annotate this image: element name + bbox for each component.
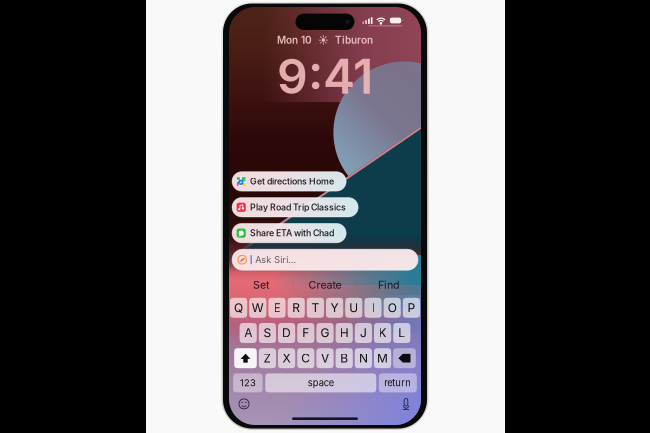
button[interactable]: Z	[259, 348, 276, 368]
staticText: W	[252, 300, 264, 315]
staticText: Mon 10 ☀ Tiburon	[277, 34, 373, 46]
button[interactable]: Y	[326, 298, 343, 318]
staticText: Set	[253, 278, 269, 291]
button[interactable]: Delete	[393, 348, 416, 368]
staticText: T	[311, 300, 319, 315]
button[interactable]: space	[265, 373, 376, 392]
button[interactable]: S	[259, 323, 276, 343]
button[interactable]: Dictate	[399, 396, 413, 411]
staticText: Get directions Home	[250, 176, 334, 187]
staticText: P	[407, 300, 415, 315]
staticText: R	[292, 300, 300, 315]
button[interactable]: X	[278, 348, 295, 368]
button[interactable]: Q	[230, 298, 247, 318]
staticText: 9:41	[277, 47, 373, 105]
staticText: Ask Siri…	[255, 254, 296, 265]
staticText: Create	[308, 278, 341, 291]
button[interactable]: Shift	[234, 348, 257, 368]
staticText: H	[340, 326, 349, 340]
button[interactable]: B	[336, 348, 353, 368]
button[interactable]: T	[307, 298, 324, 318]
button[interactable]: E	[268, 298, 286, 318]
button[interactable]: W	[249, 298, 266, 318]
button[interactable]: Play Road Trip Classics	[232, 197, 358, 217]
button[interactable]: Find	[357, 275, 421, 294]
button[interactable]: K	[374, 323, 391, 343]
staticText: J	[360, 326, 367, 340]
staticText: I	[371, 300, 374, 315]
staticText: D	[282, 326, 291, 340]
button[interactable]: Get directions Home	[232, 172, 346, 191]
staticText: Q	[234, 300, 243, 315]
staticText: Find	[378, 278, 400, 291]
staticText: A	[244, 326, 252, 340]
button[interactable]: L	[393, 323, 410, 343]
button[interactable]: P	[403, 298, 420, 318]
staticText: return	[384, 377, 411, 389]
button[interactable]: 123	[233, 373, 263, 392]
button[interactable]: J	[355, 323, 372, 343]
staticText: K	[379, 326, 387, 340]
button[interactable]: R	[288, 298, 305, 318]
button[interactable]: Set	[229, 275, 293, 294]
staticText: Play Road Trip Classics	[250, 202, 346, 212]
staticText: B	[340, 351, 348, 365]
button[interactable]: N	[355, 348, 372, 368]
button[interactable]: I	[364, 298, 382, 318]
button[interactable]: G	[316, 323, 334, 343]
button[interactable]: A	[240, 323, 257, 343]
button[interactable]: C	[297, 348, 314, 368]
button[interactable]: M	[374, 348, 391, 368]
button[interactable]: Create	[293, 275, 357, 294]
staticText: G	[320, 326, 329, 340]
staticText: C	[301, 351, 310, 365]
button[interactable]: Ask Siri…	[232, 249, 418, 270]
staticText: U	[349, 300, 358, 315]
button[interactable]: O	[384, 298, 401, 318]
staticText: V	[321, 351, 329, 365]
button[interactable]: V	[316, 348, 334, 368]
button[interactable]: D	[278, 323, 295, 343]
staticText: Y	[331, 300, 339, 315]
button[interactable]: F	[297, 323, 314, 343]
staticText: N	[359, 351, 368, 365]
staticText: O	[388, 300, 397, 315]
staticText: S	[263, 326, 271, 340]
staticText: L	[398, 326, 405, 340]
button[interactable]: U	[345, 298, 362, 318]
button[interactable]: Emoji	[237, 397, 251, 411]
button[interactable]: Share ETA with Chad	[232, 223, 346, 243]
button[interactable]: return	[379, 373, 417, 392]
staticText: F	[302, 326, 309, 340]
staticText: M	[377, 351, 388, 365]
staticText: Z	[263, 351, 271, 365]
button[interactable]: H	[336, 323, 353, 343]
staticText: space	[308, 377, 334, 389]
staticText: E	[273, 300, 280, 315]
staticText: X	[283, 351, 291, 365]
staticText: Share ETA with Chad	[250, 228, 334, 238]
staticText: 123	[240, 377, 256, 389]
